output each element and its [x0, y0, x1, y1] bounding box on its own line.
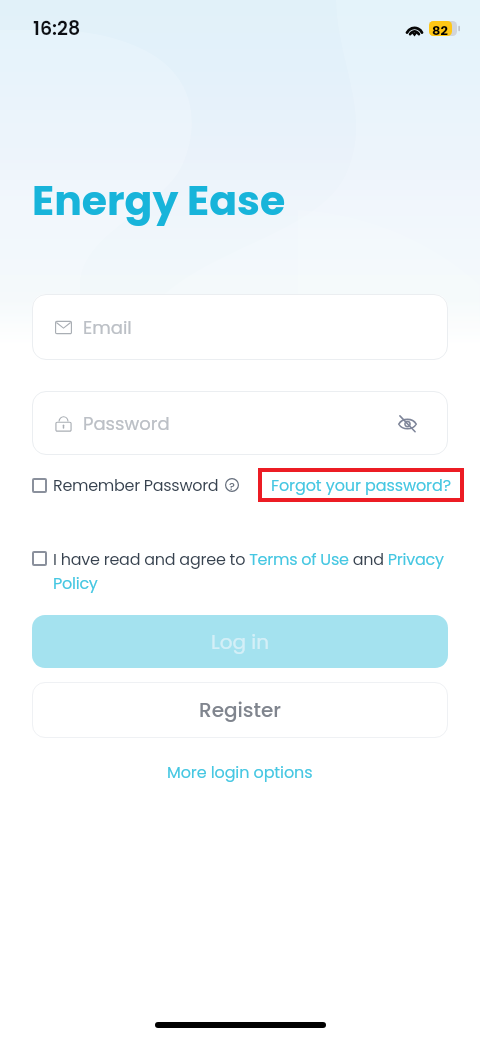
- staticText: Remember Password: [53, 474, 219, 496]
- staticText: 16:28: [33, 15, 81, 42]
- other: Help: [225, 478, 239, 492]
- staticText: Forgot your password?: [271, 474, 451, 496]
- staticText: 82: [432, 21, 448, 36]
- staticText: Register: [199, 696, 281, 724]
- staticText: ?: [229, 478, 235, 492]
- staticText: Password: [83, 411, 170, 436]
- button[interactable]: I have read and agree to Terms of Use an…: [53, 548, 450, 594]
- button[interactable]: Forgot your password?: [262, 472, 460, 498]
- button[interactable]: Log in: [32, 615, 448, 668]
- button[interactable]: Show password: [393, 409, 422, 438]
- staticText: Log in: [211, 628, 270, 656]
- staticText: Energy Ease: [32, 172, 286, 229]
- staticText: Email: [83, 315, 132, 340]
- button[interactable]: More login options: [161, 755, 319, 789]
- button[interactable]: Register: [32, 682, 448, 738]
- button[interactable]: Email: [32, 294, 448, 360]
- button[interactable]: Password: [32, 391, 448, 455]
- button[interactable]: Remember Password: [32, 474, 239, 496]
